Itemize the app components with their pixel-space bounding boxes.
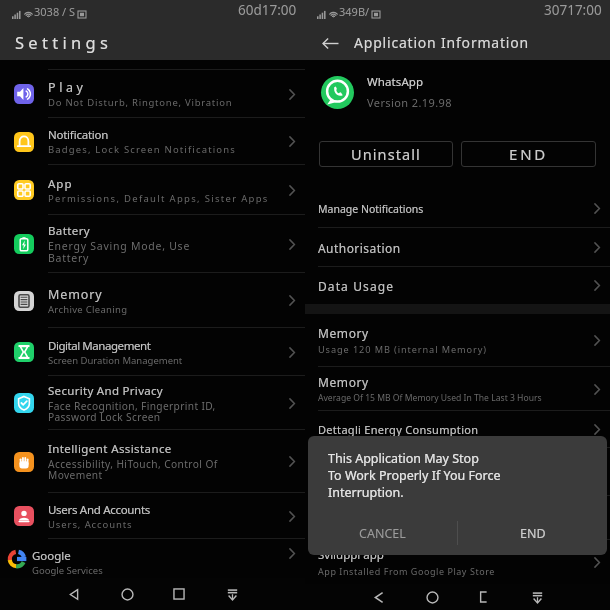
button[interactable]: Notification [0, 118, 305, 165]
staticText: Application Information [354, 33, 529, 52]
staticText: Do Not Disturb, Ringtone, Vibration [48, 96, 233, 109]
staticText: Badges, Lock Screen Notifications [48, 143, 236, 156]
button[interactable]: CANCEL [308, 511, 457, 555]
staticText: Average Of 15 MB Of Memory Used In The L… [318, 392, 542, 404]
button[interactable]: Recents [468, 584, 500, 610]
staticText: 30717:00 [544, 1, 602, 19]
button[interactable]: Back [363, 584, 395, 610]
staticText: Notification [48, 127, 109, 143]
button[interactable]: Hide keyboard [216, 578, 248, 610]
button[interactable]: Manage Notifications [305, 189, 610, 228]
staticText: No Default Set [318, 521, 378, 533]
staticText: Usage 120 MB (internal Memory) [318, 343, 487, 356]
button[interactable]: Recents [163, 578, 195, 610]
button[interactable]: Default Open [305, 496, 610, 540]
button[interactable]: Dettagli Energy Consumption [305, 411, 610, 448]
staticText: Users And Accounts [48, 502, 150, 518]
button[interactable]: Sviluppi app [305, 540, 610, 584]
button[interactable]: Users And Accounts [0, 493, 305, 539]
staticText: Users, Accounts [48, 518, 133, 531]
staticText: App Installed From Google Play Store [318, 565, 495, 577]
staticText: Memory [48, 286, 103, 303]
button[interactable]: Battery [0, 215, 305, 273]
staticText: 60d17:00 [238, 1, 297, 19]
staticText: Usage Of Memory In The Background [318, 475, 474, 487]
button[interactable]: Home [416, 584, 448, 610]
staticText: END [520, 525, 546, 542]
staticText: Data Usage [318, 278, 395, 294]
button[interactable]: Memory [0, 273, 305, 328]
button[interactable]: Digital Management [0, 328, 305, 376]
button[interactable]: Memory [305, 314, 610, 367]
staticText: Uninstall [351, 144, 421, 164]
staticText: Version 2.19.98 [367, 95, 452, 110]
button[interactable]: Memory [305, 367, 610, 411]
staticText: Screen Duration Management [48, 354, 183, 367]
staticText: Security And Privacy [48, 383, 164, 399]
staticText: This Application May Stop To Work Proper… [328, 450, 501, 501]
staticText: Google [32, 548, 71, 564]
button[interactable]: App [0, 165, 305, 215]
staticText: Dettagli Energy Consumption [318, 422, 479, 437]
button[interactable]: Home [111, 578, 143, 610]
staticText: Manage Notifications [318, 202, 424, 216]
button[interactable]: Google [0, 539, 305, 578]
staticText: Authorisation [318, 240, 401, 256]
staticText: Digital Management [48, 338, 151, 354]
staticText: Accessibility, HiTouch, Control Of Movem… [48, 457, 218, 482]
button[interactable]: Memory Usage [305, 448, 610, 496]
staticText: Play [48, 79, 87, 96]
button[interactable]: Security And Privacy [0, 376, 305, 430]
button[interactable]: END [458, 511, 607, 555]
staticText: WhatsApp [367, 74, 424, 90]
button[interactable]: Authorisation [305, 228, 610, 267]
staticText: Battery [48, 223, 91, 239]
staticText: Settings [15, 31, 113, 53]
button[interactable]: Data Usage [305, 267, 610, 304]
staticText: Intelligent Assistance [48, 441, 172, 457]
staticText: Energy Saving Mode, Use Battery [48, 239, 191, 265]
button[interactable]: Play [0, 70, 305, 118]
staticText: Face Recognition, Fingerprint ID, Passwo… [48, 399, 216, 424]
button[interactable]: END [461, 141, 596, 167]
button[interactable]: Intelligent Assistance [0, 430, 305, 493]
button[interactable]: Back [318, 31, 342, 55]
staticText: Sviluppi app [318, 547, 384, 563]
staticText: Google Services [32, 564, 103, 577]
button[interactable]: Uninstall [319, 141, 453, 167]
button[interactable]: Back [58, 578, 90, 610]
staticText: Memory [318, 374, 369, 390]
staticText: Permissions, Default Apps, Sister Apps [48, 192, 269, 205]
staticText: Memory [318, 325, 369, 341]
staticText: 349B/ [339, 4, 370, 19]
staticText: CANCEL [359, 525, 406, 542]
staticText: Memory Usage [318, 457, 401, 473]
staticText: 3038 / S [34, 4, 76, 19]
button[interactable]: Hide keyboard [521, 584, 553, 610]
staticText: App [48, 176, 73, 192]
staticText: END [509, 144, 549, 164]
staticText: Archive Cleaning [48, 303, 128, 316]
